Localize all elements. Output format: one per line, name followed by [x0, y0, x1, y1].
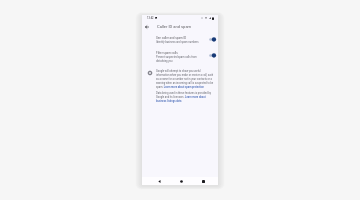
button[interactable]: Home	[177, 177, 185, 185]
staticText: Google will attempt to show you useful i…	[156, 70, 214, 89]
button[interactable]: Recent apps	[199, 177, 207, 185]
button[interactable]: Filter spam calls	[142, 50, 218, 64]
staticText: 13:42	[147, 17, 154, 20]
button[interactable]: Back	[155, 177, 163, 185]
staticText: Data being used in these features is pro…	[156, 92, 214, 103]
staticText: See caller and spam ID	[156, 36, 187, 39]
staticText: Prevent suspected spam calls from distur…	[156, 56, 201, 63]
staticText: Caller ID and spam	[157, 24, 192, 29]
button[interactable]: Toggle setting	[205, 36, 215, 43]
button[interactable]: Navigate up	[143, 23, 151, 31]
staticText: Filter spam calls	[156, 51, 178, 54]
staticText: Identify business and spam numbers	[156, 41, 199, 44]
button[interactable]: See caller and spam ID	[142, 35, 218, 45]
button[interactable]: Toggle setting	[205, 52, 215, 59]
